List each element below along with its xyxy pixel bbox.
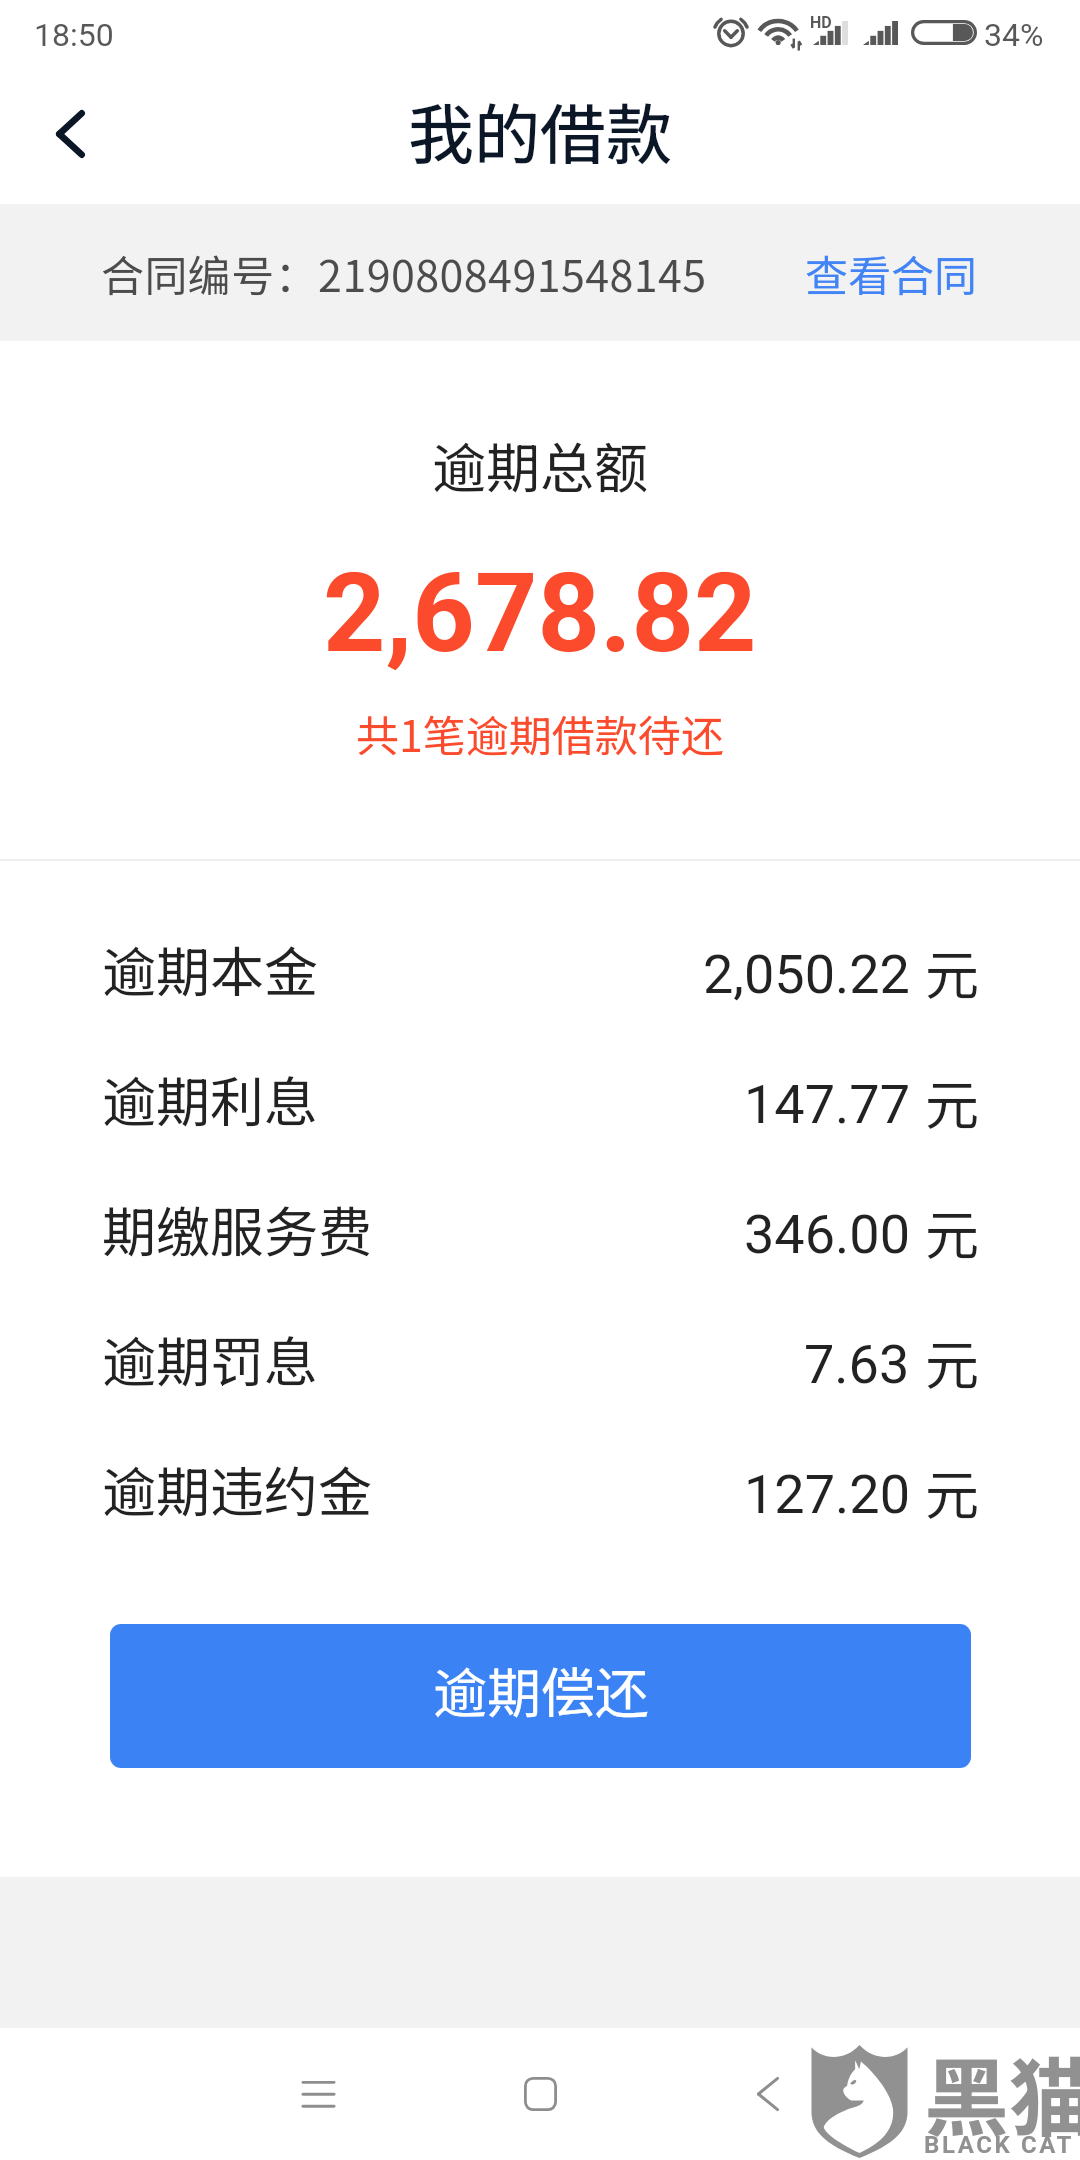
button[interactable]: Home [480, 2028, 600, 2160]
staticText: 查看合同 [805, 242, 977, 304]
staticText: 逾期本金 [102, 929, 318, 1007]
staticText: 逾期偿还 [433, 1650, 649, 1728]
staticText: 逾期利息 [102, 1059, 318, 1137]
staticText: 我的借款 [408, 82, 672, 178]
button[interactable]: 查看合同 [775, 204, 1007, 341]
staticText: 逾期罚息 [102, 1319, 318, 1397]
button[interactable]: Recent apps [258, 2028, 378, 2160]
staticText: 元 [925, 932, 979, 1010]
button[interactable]: Back [708, 2028, 828, 2160]
staticText: 2,050.22 [703, 943, 910, 1006]
staticText: 34% [984, 16, 1044, 54]
staticText: 合同编号：2190808491548145 [101, 242, 707, 304]
staticText: 127.20 [744, 1463, 910, 1526]
staticText: BLACK CAT [924, 2131, 1075, 2159]
staticText: 黑猫 [924, 2030, 1080, 2153]
staticText: 期缴服务费 [102, 1189, 372, 1267]
staticText: HD [810, 13, 832, 32]
staticText: 元 [925, 1322, 979, 1400]
button[interactable]: 逾期罚息 [0, 1293, 1080, 1423]
staticText: 18:50 [34, 16, 114, 54]
staticText: 元 [925, 1062, 979, 1140]
staticText: 元 [925, 1192, 979, 1270]
button[interactable]: 期缴服务费 [0, 1163, 1080, 1293]
staticText: 7.63 [804, 1333, 910, 1396]
staticText: 元 [925, 1452, 979, 1530]
staticText: 346.00 [744, 1203, 910, 1266]
staticText: 2,678.82 [323, 550, 757, 678]
staticText: 共1笔逾期借款待还 [356, 702, 724, 764]
staticText: 147.77 [744, 1073, 910, 1136]
button[interactable]: 逾期本金 [0, 903, 1080, 1033]
button[interactable]: Back [18, 55, 122, 204]
staticText: 逾期违约金 [102, 1449, 372, 1527]
staticText: 逾期总额 [432, 425, 648, 503]
button[interactable]: 逾期偿还 [110, 1624, 971, 1768]
button[interactable]: 逾期违约金 [0, 1423, 1080, 1553]
button[interactable]: 逾期利息 [0, 1033, 1080, 1163]
